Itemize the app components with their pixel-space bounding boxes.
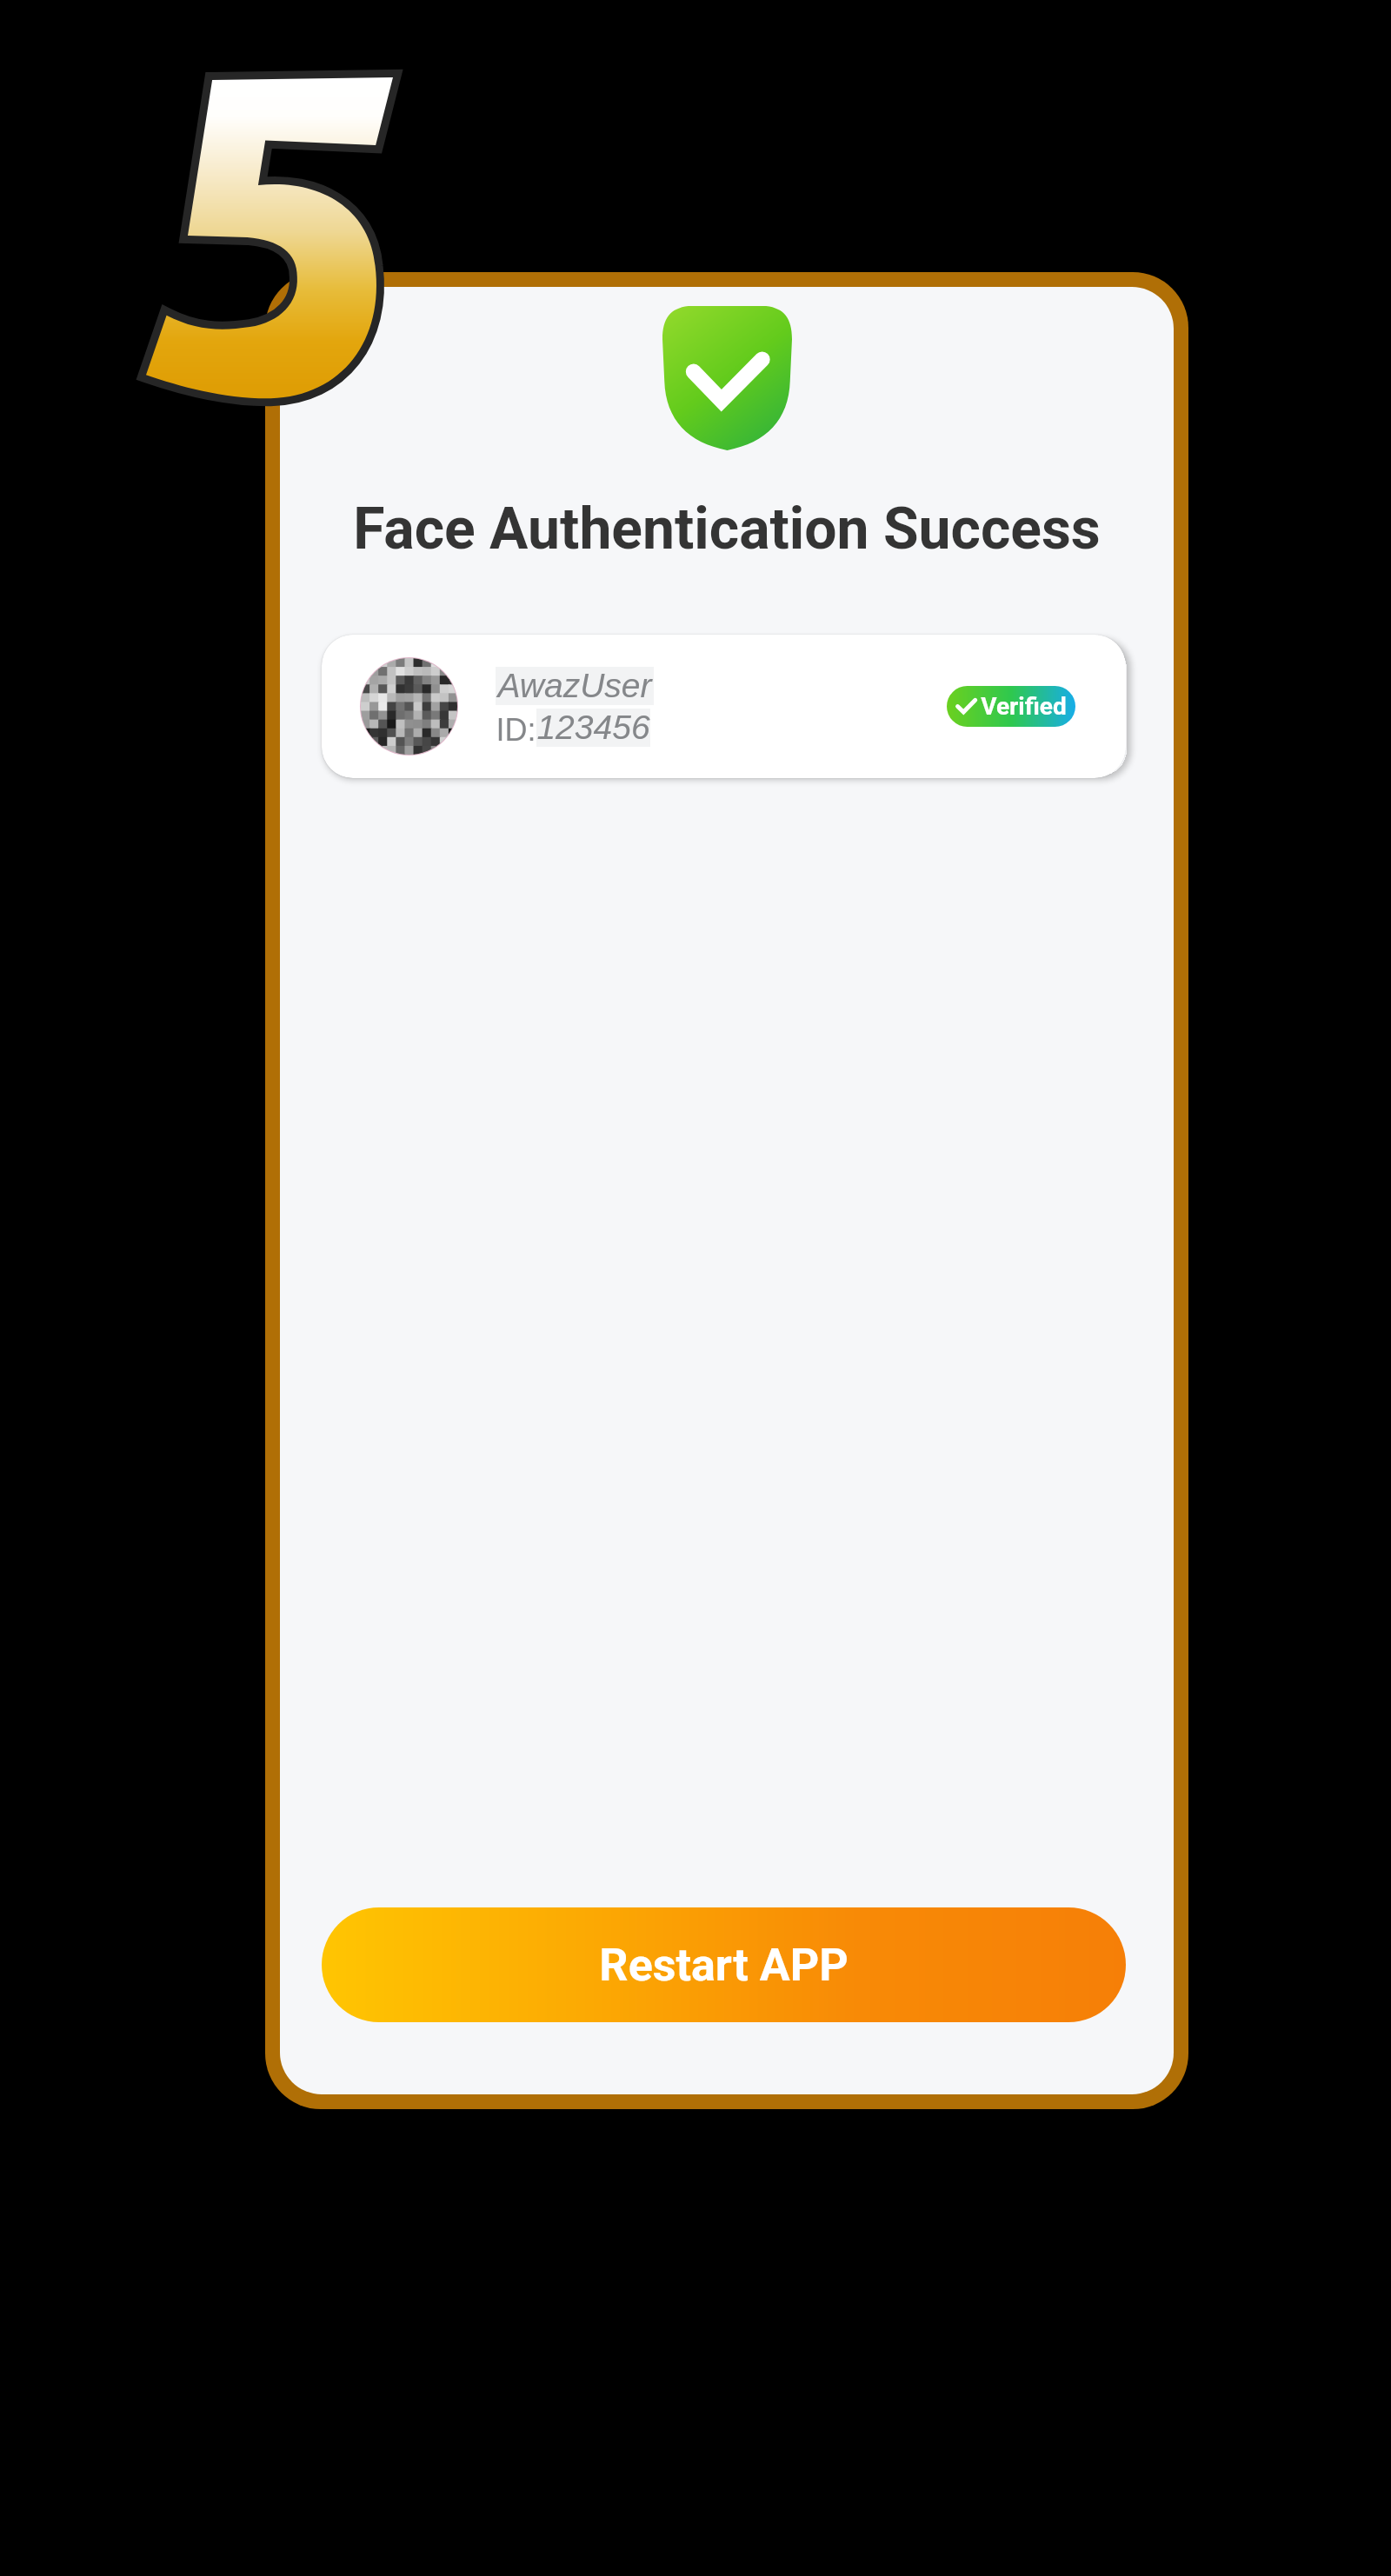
- staticText: ID:: [496, 712, 536, 747]
- staticText: Restart APP: [599, 1939, 849, 1992]
- staticText: Verified: [981, 692, 1067, 721]
- staticText: AwazUser: [497, 667, 652, 705]
- button[interactable]: Restart APP: [322, 1907, 1126, 2022]
- staticText: Face Authentication Success: [353, 496, 1101, 562]
- other: Authentication succeeded: [662, 306, 792, 450]
- button[interactable]: AwazUser: [322, 635, 1126, 778]
- staticText: 123456: [536, 709, 650, 747]
- button[interactable]: Verified: [947, 686, 1075, 727]
